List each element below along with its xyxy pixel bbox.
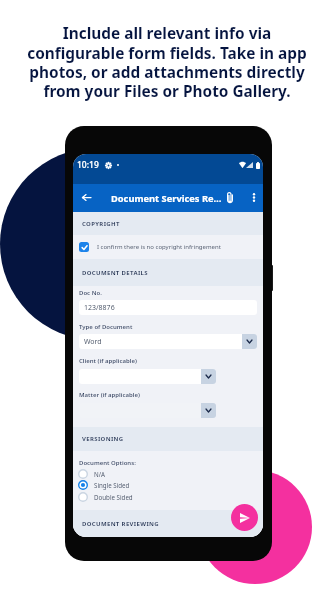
button[interactable]: Send: [231, 504, 258, 531]
staticText: COPYRIGHT: [82, 220, 120, 228]
staticText: N/A: [94, 470, 105, 478]
staticText: [84, 406, 206, 416]
button[interactable]: Attach file: [220, 187, 240, 207]
button[interactable]: 123/8876: [79, 300, 257, 315]
staticText: Doc No.: [79, 289, 102, 297]
staticText: 123/8876: [84, 303, 115, 313]
staticText: Type of Document: [79, 323, 133, 331]
staticText: Double Sided: [94, 493, 133, 501]
button[interactable]: More options: [244, 187, 263, 207]
button[interactable]: [79, 403, 216, 418]
button[interactable]: [79, 369, 216, 384]
staticText: Word: [84, 337, 247, 347]
staticText: Single Sided: [94, 481, 130, 489]
button[interactable]: Single Sided: [78, 479, 130, 491]
staticText: DOCUMENT REVIEWING: [82, 520, 159, 528]
button[interactable]: I confirm there is no copyright infringe…: [79, 235, 263, 259]
staticText: Document Options:: [79, 459, 136, 467]
staticText: DOCUMENT DETAILS: [82, 269, 148, 277]
button[interactable]: Word: [79, 334, 257, 349]
staticText: Document Services Re…: [111, 192, 222, 205]
staticText: [84, 372, 206, 382]
button[interactable]: Back: [76, 187, 96, 207]
staticText: Client (if applicable): [79, 357, 137, 365]
staticText: I confirm there is no copyright infringe…: [97, 243, 221, 251]
staticText: Matter (if applicable): [79, 391, 140, 399]
staticText: Include all relevant info via configurab…: [27, 23, 307, 102]
staticText: 10:19: [77, 159, 99, 171]
button[interactable]: Document Services Re…: [107, 184, 222, 212]
button[interactable]: N/A: [78, 468, 105, 480]
staticText: VERSIONING: [82, 435, 124, 443]
button[interactable]: Double Sided: [78, 491, 133, 503]
